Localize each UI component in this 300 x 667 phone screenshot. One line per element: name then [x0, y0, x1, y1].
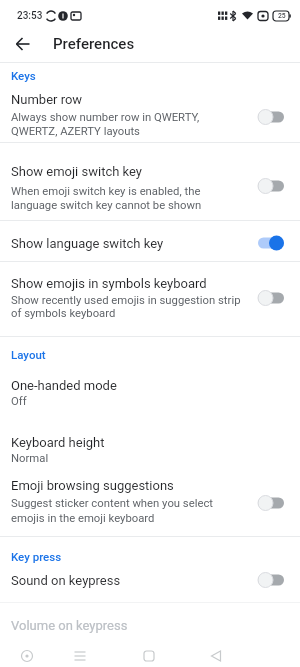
button[interactable]	[0, 221, 300, 261]
staticText: 25	[278, 12, 286, 20]
staticText: Number row	[11, 92, 83, 107]
staticText: Suggest sticker content when you select	[11, 497, 214, 510]
staticText: Key press	[11, 550, 62, 563]
staticText: Show emoji switch key	[11, 164, 142, 179]
button[interactable]	[0, 86, 300, 142]
staticText: Keyboard height	[11, 435, 105, 450]
staticText: emojis in the emoji keyboard	[11, 512, 155, 525]
staticText: Off	[11, 395, 27, 408]
staticText: of symbols keyboard	[11, 307, 116, 320]
staticText: Sound on keypress	[11, 573, 121, 588]
button[interactable]	[0, 422, 300, 474]
staticText: Volume on keypress	[11, 618, 128, 633]
button[interactable]	[7, 28, 39, 60]
staticText: Normal	[11, 452, 49, 465]
button[interactable]	[135, 642, 163, 666]
button[interactable]	[0, 366, 300, 418]
button[interactable]	[0, 474, 300, 536]
button[interactable]	[0, 562, 300, 602]
staticText: Show language switch key	[11, 236, 164, 251]
button[interactable]	[0, 143, 300, 220]
button[interactable]	[13, 642, 41, 666]
button[interactable]	[0, 262, 300, 336]
staticText: Keys	[11, 69, 36, 82]
staticText: Layout	[11, 348, 46, 361]
staticText: Always show number row in QWERTY,	[11, 111, 200, 124]
button[interactable]	[202, 642, 230, 666]
staticText: Emoji browsing suggestions	[11, 478, 174, 493]
staticText: Show recently used emojis in suggestion …	[11, 294, 241, 307]
staticText: When emoji switch key is enabled, the	[11, 185, 201, 198]
button[interactable]	[66, 642, 94, 666]
staticText: One-handed mode	[11, 378, 117, 393]
staticText: QWERTZ, AZERTY layouts	[11, 125, 140, 138]
staticText: Show emojis in symbols keyboard	[11, 276, 207, 291]
staticText: language switch key cannot be shown	[11, 199, 202, 212]
staticText: 23:53	[17, 10, 43, 22]
button[interactable]	[0, 604, 300, 640]
staticText: Preferences	[53, 35, 135, 53]
